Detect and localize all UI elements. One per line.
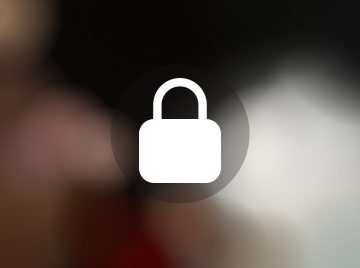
button[interactable]: Content hidden: [110, 64, 249, 203]
